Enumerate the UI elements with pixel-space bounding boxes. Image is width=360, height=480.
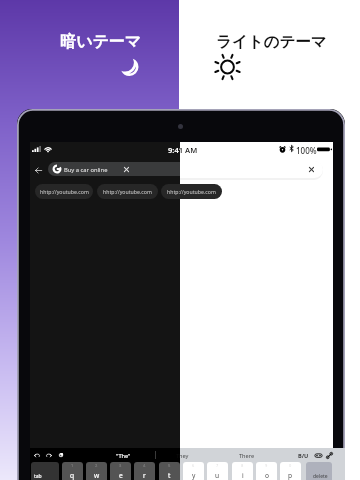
staticText: 8 <box>241 463 244 468</box>
staticText: 9 <box>265 463 268 468</box>
staticText: hhtp://youtube.com <box>103 188 152 195</box>
staticText: e <box>119 471 123 480</box>
staticText: Buy a car online <box>64 166 108 174</box>
button[interactable]: Clear <box>180 161 323 178</box>
button[interactable]: Back <box>34 166 43 175</box>
button[interactable]: Redo <box>45 451 53 459</box>
staticText: 9:41 AM <box>180 145 198 155</box>
button[interactable]: 4 <box>134 462 155 480</box>
staticText: u <box>215 471 220 480</box>
staticText: o <box>265 471 269 480</box>
button[interactable]: Paste <box>57 451 65 459</box>
staticText: 3 <box>119 463 122 468</box>
staticText: 暗いテーマ <box>60 32 142 52</box>
button[interactable]: 1 <box>62 462 83 480</box>
staticText: t <box>168 471 171 480</box>
staticText: tab <box>34 473 42 480</box>
button[interactable]: 2 <box>86 462 107 480</box>
button[interactable]: 9 <box>256 462 277 480</box>
staticText: 7 <box>216 463 219 468</box>
staticText: r <box>143 471 146 480</box>
staticText: 5 <box>168 463 171 468</box>
staticText: delete <box>313 473 328 480</box>
button[interactable]: 6 <box>183 462 204 480</box>
staticText: They <box>176 452 189 460</box>
button[interactable]: Privacy <box>279 146 286 153</box>
staticText: q <box>70 471 75 480</box>
button[interactable]: 7 <box>207 462 228 480</box>
staticText: 2 <box>95 463 98 468</box>
staticText: 100% <box>296 145 317 156</box>
staticText: There <box>239 452 255 460</box>
button[interactable]: tab <box>31 462 59 480</box>
staticText: 9:41 AM <box>168 145 180 155</box>
button[interactable]: hhtp://youtube.com <box>161 184 222 199</box>
staticText: 6 <box>192 463 195 468</box>
staticText: p <box>288 471 293 480</box>
staticText: y <box>192 471 196 480</box>
staticText: "The" <box>116 452 131 460</box>
button[interactable]: delete <box>306 462 332 480</box>
button[interactable]: Stickers <box>314 451 323 460</box>
staticText: 1 <box>71 463 74 468</box>
button[interactable]: Attach <box>325 451 334 460</box>
button[interactable]: Undo <box>33 451 41 459</box>
button[interactable]: hhtp://youtube.com <box>97 184 158 199</box>
staticText: hhtp://youtube.com <box>40 188 89 195</box>
button[interactable]: 0 <box>280 462 301 480</box>
other: Clear <box>308 166 315 173</box>
staticText: 4 <box>143 463 146 468</box>
button[interactable]: Dark theme <box>120 58 139 76</box>
staticText: w <box>94 471 100 480</box>
button[interactable]: 5 <box>159 462 180 480</box>
button[interactable]: 3 <box>110 462 131 480</box>
staticText: ライトのテーマ <box>216 32 327 52</box>
button[interactable]: Buy a car online <box>48 162 180 176</box>
staticText: B/U <box>298 452 309 460</box>
other: Clear <box>123 166 130 173</box>
staticText: i <box>242 471 244 480</box>
button[interactable]: 8 <box>232 462 253 480</box>
staticText: hhtp://youtube.com <box>167 188 216 195</box>
staticText: 0 <box>289 463 292 468</box>
button[interactable]: Light theme <box>216 57 239 77</box>
button[interactable]: hhtp://youtube.com <box>35 184 93 199</box>
